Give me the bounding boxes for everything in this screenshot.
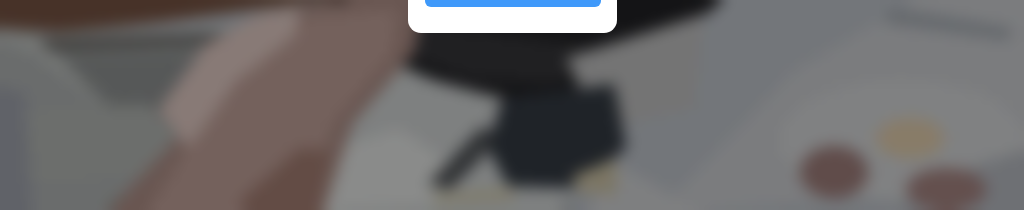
button[interactable]: Confirm xyxy=(425,0,601,7)
